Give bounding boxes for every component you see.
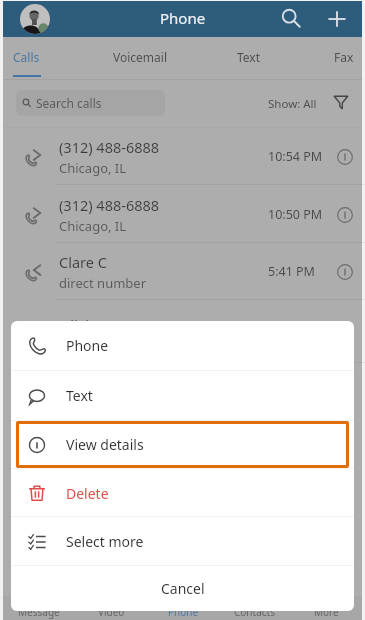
button[interactable]: Text <box>217 38 281 78</box>
button[interactable]: (312) 488-6888 <box>3 186 362 243</box>
staticText: (312) 488-6888 <box>59 137 160 157</box>
button[interactable]: Text <box>11 371 354 420</box>
staticText: Phone <box>66 336 109 355</box>
button[interactable]: More <box>290 596 362 620</box>
button[interactable]: View details <box>11 421 354 468</box>
button[interactable]: New call <box>326 8 348 30</box>
button[interactable]: Contacts <box>218 596 290 620</box>
staticText: direct number <box>59 274 147 292</box>
button[interactable]: Video <box>75 596 147 620</box>
staticText: Search calls <box>36 95 102 111</box>
staticText: Message <box>18 605 60 619</box>
staticText: Cancel <box>161 579 205 598</box>
staticText: Phone <box>168 605 199 619</box>
staticText: Text <box>66 386 93 405</box>
staticText: Clare C <box>59 252 107 272</box>
button[interactable]: (312) 488-6888 <box>3 128 362 185</box>
button[interactable]: Search <box>280 7 303 30</box>
staticText: mobile <box>59 337 102 355</box>
staticText: Phone <box>160 8 206 28</box>
button[interactable]: Delete <box>11 469 354 517</box>
staticText: Video <box>98 605 125 619</box>
staticText: (312) 488-6888 <box>59 195 160 215</box>
staticText: Chicago, IL <box>59 159 127 177</box>
button[interactable]: Phone <box>11 321 354 370</box>
staticText: Voicemail <box>113 49 167 65</box>
staticText: Text <box>237 49 261 65</box>
button[interactable]: Calls <box>0 38 58 78</box>
button[interactable]: Clare C <box>3 243 362 300</box>
button[interactable]: Select more <box>11 517 354 566</box>
button[interactable]: Phone <box>147 596 219 620</box>
button[interactable]: Search calls <box>16 90 165 116</box>
button[interactable]: Cancel <box>11 566 354 611</box>
button[interactable]: Fax <box>312 38 365 78</box>
staticText: Select more <box>66 532 144 551</box>
staticText: 10:54 PM <box>268 148 323 165</box>
staticText: Show: All <box>268 96 317 112</box>
staticText: View details <box>66 435 144 454</box>
staticText: Delete <box>66 484 109 503</box>
staticText: Chicago, IL <box>59 217 127 235</box>
button[interactable]: Message <box>3 596 75 620</box>
button[interactable]: Voicemail <box>108 38 172 78</box>
button[interactable]: Filter <box>333 94 349 110</box>
staticText: 10:50 PM <box>268 206 323 223</box>
staticText: Contacts <box>234 605 275 619</box>
staticText: More <box>314 605 339 619</box>
staticText: Olivia H <box>59 315 112 335</box>
button[interactable]: Olivia H <box>3 306 362 363</box>
staticText: Calls <box>13 49 40 65</box>
button[interactable]: Profile <box>20 4 50 34</box>
staticText: 5:41 PM <box>268 263 315 280</box>
staticText: Fax <box>334 49 354 65</box>
